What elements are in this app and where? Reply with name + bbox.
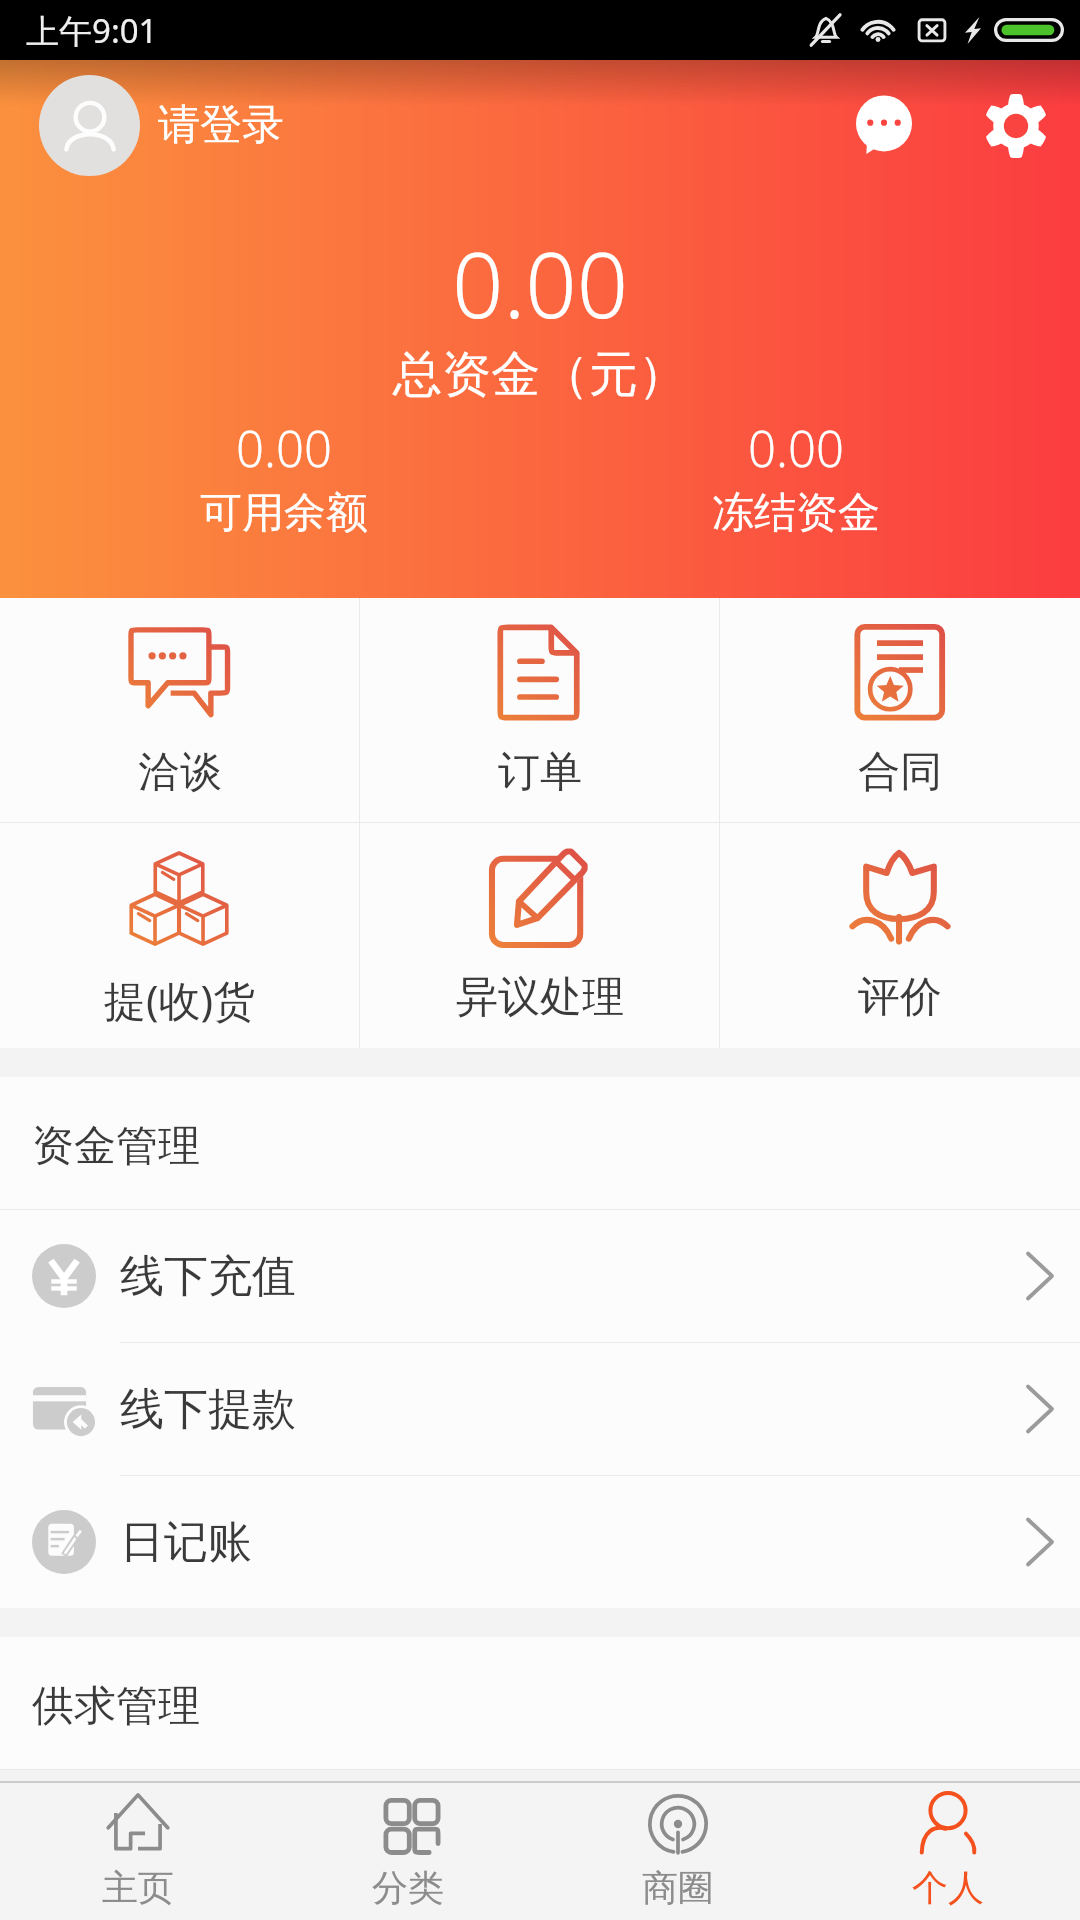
staticText: 供求管理 — [32, 1680, 200, 1733]
staticText: 线下充值 — [120, 1249, 296, 1304]
staticText: 冻结资金 — [712, 487, 880, 540]
staticText: 合同 — [858, 746, 942, 799]
button[interactable]: 线下提款 — [0, 1343, 1080, 1475]
staticText: 可用余额 — [200, 487, 368, 540]
staticText: 0.00 — [748, 415, 844, 482]
staticText: 提(收)货 — [104, 971, 256, 1028]
button[interactable]: 线下充值 — [0, 1210, 1080, 1342]
staticText: 总资金（元） — [393, 344, 687, 406]
button[interactable]: 异议处理 — [360, 823, 720, 1048]
staticText: 评价 — [858, 971, 942, 1024]
button[interactable]: 评价 — [720, 823, 1080, 1048]
staticText: 主页 — [102, 1865, 174, 1910]
staticText: 洽谈 — [138, 746, 222, 799]
staticText: 0.00 — [236, 415, 332, 482]
button[interactable]: 日记账 — [0, 1476, 1080, 1608]
staticText: 订单 — [498, 746, 582, 799]
button[interactable]: 订单 — [360, 598, 720, 822]
staticText: 线下提款 — [120, 1382, 296, 1437]
staticText: 日记账 — [120, 1515, 252, 1570]
staticText: 上午9:01 — [26, 8, 158, 53]
button[interactable]: 商圈 — [540, 1783, 810, 1920]
staticText: 商圈 — [642, 1865, 714, 1910]
button[interactable]: Avatar — [39, 75, 140, 176]
staticText: 0.00 — [452, 222, 629, 345]
staticText: 资金管理 — [32, 1120, 200, 1173]
button[interactable]: 请登录 — [158, 99, 284, 152]
button[interactable]: 合同 — [720, 598, 1080, 822]
button[interactable]: 洽谈 — [0, 598, 360, 822]
staticText: 异议处理 — [456, 971, 624, 1024]
button[interactable]: Settings — [972, 82, 1060, 170]
button[interactable]: 提(收)货 — [0, 823, 360, 1048]
button[interactable]: 个人 — [810, 1783, 1080, 1920]
button[interactable]: Messages — [840, 82, 928, 170]
button[interactable]: 分类 — [270, 1783, 540, 1920]
staticText: 分类 — [372, 1865, 444, 1910]
button[interactable]: 主页 — [0, 1783, 270, 1920]
staticText: 个人 — [912, 1865, 984, 1910]
